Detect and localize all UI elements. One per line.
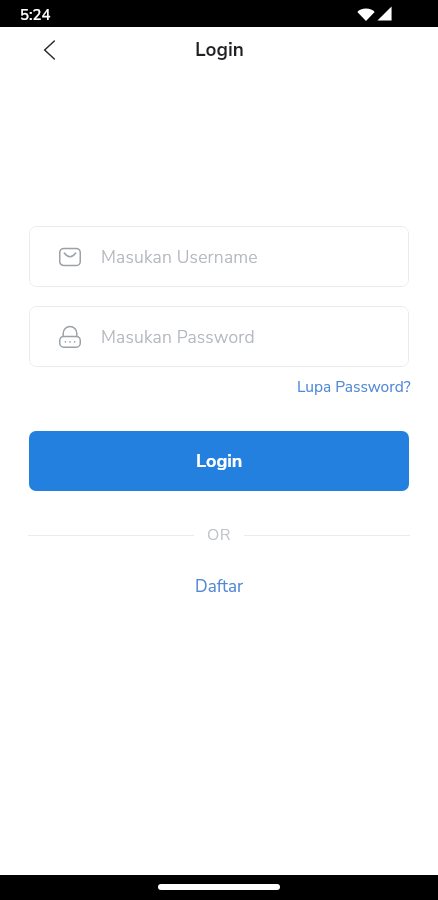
button[interactable]: Lupa Password?	[269, 374, 438, 399]
staticText: Login	[195, 37, 244, 63]
button[interactable]: Back	[29, 30, 69, 70]
staticText: 5:24	[20, 5, 51, 25]
staticText: Masukan Password	[101, 325, 255, 349]
staticText: OR	[207, 524, 231, 546]
staticText: Masukan Username	[101, 245, 258, 269]
button[interactable]: Masukan Password	[29, 306, 409, 367]
button[interactable]: Daftar	[181, 573, 258, 600]
button[interactable]: Masukan Username	[29, 226, 409, 287]
button[interactable]: Login	[29, 431, 409, 491]
staticText: Daftar	[195, 575, 244, 598]
staticText: Lupa Password?	[297, 376, 411, 397]
staticText: Login	[196, 449, 243, 474]
